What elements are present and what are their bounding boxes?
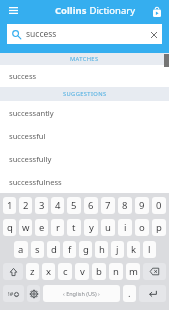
staticText: u: [105, 221, 111, 234]
button[interactable]: y: [84, 219, 98, 236]
staticText: b: [96, 265, 102, 278]
button[interactable]: o: [135, 219, 149, 236]
button[interactable]: a: [14, 241, 28, 258]
button[interactable]: 4: [51, 197, 64, 214]
button[interactable]: v: [75, 263, 89, 280]
staticText: m: [129, 265, 138, 278]
staticText: success: [9, 71, 37, 81]
staticText: d: [51, 243, 57, 256]
button[interactable]: 3: [35, 197, 48, 214]
staticText: o: [139, 221, 145, 234]
staticText: 3: [39, 199, 45, 212]
staticText: x: [46, 265, 52, 278]
button[interactable]: i: [118, 219, 132, 236]
staticText: successfully: [9, 154, 52, 164]
button[interactable]: p: [152, 219, 166, 236]
staticText: successantly: [9, 108, 54, 118]
staticText: successfulness: [9, 177, 62, 187]
button[interactable]: Store: [145, 0, 169, 24]
staticText: MATCHES: [70, 55, 99, 63]
button[interactable]: l: [143, 241, 156, 258]
staticText: 2: [23, 199, 29, 212]
button[interactable]: w: [19, 219, 32, 236]
staticText: g: [83, 243, 89, 256]
staticText: r: [56, 221, 60, 234]
staticText: w: [22, 221, 30, 234]
button[interactable]: Enter: [139, 285, 166, 302]
button[interactable]: 8: [118, 197, 132, 214]
button[interactable]: g: [79, 241, 92, 258]
staticText: Dictionary: [87, 4, 136, 17]
staticText: successful: [9, 131, 46, 141]
button[interactable]: f: [63, 241, 76, 258]
button[interactable]: 0: [152, 197, 166, 214]
staticText: j: [116, 243, 119, 256]
button[interactable]: r: [51, 219, 64, 236]
staticText: success: [26, 28, 57, 40]
staticText: 4: [55, 199, 61, 212]
button[interactable]: Space: [43, 285, 120, 302]
button[interactable]: h: [95, 241, 108, 258]
button[interactable]: u: [101, 219, 115, 236]
staticText: z: [30, 265, 35, 278]
button[interactable]: t: [67, 219, 81, 236]
button[interactable]: c: [58, 263, 72, 280]
button[interactable]: success: [0, 65, 169, 87]
button[interactable]: z: [26, 263, 39, 280]
staticText: i: [124, 221, 127, 234]
button[interactable]: successfulness: [0, 170, 169, 193]
button[interactable]: success: [7, 24, 162, 44]
staticText: 0: [156, 199, 162, 212]
staticText: k: [131, 243, 137, 256]
button[interactable]: j: [111, 241, 124, 258]
staticText: y: [89, 221, 94, 234]
staticText: s: [35, 243, 40, 256]
staticText: Collins: [55, 4, 87, 17]
button[interactable]: Open navigation menu: [0, 0, 27, 20]
button[interactable]: 6: [84, 197, 98, 214]
staticText: ‹ English (US) ›: [63, 290, 100, 297]
staticText: !#: [8, 290, 14, 298]
staticText: n: [113, 265, 119, 278]
button[interactable]: 7: [101, 197, 115, 214]
staticText: 8: [122, 199, 128, 212]
button[interactable]: d: [47, 241, 60, 258]
staticText: l: [148, 243, 151, 256]
button[interactable]: 9: [135, 197, 149, 214]
button[interactable]: k: [127, 241, 140, 258]
button[interactable]: m: [126, 263, 140, 280]
button[interactable]: 1: [3, 197, 16, 214]
staticText: h: [99, 243, 105, 256]
button[interactable]: Shift: [3, 263, 23, 280]
staticText: 1: [7, 199, 13, 212]
button[interactable]: 2: [19, 197, 32, 214]
staticText: e: [39, 221, 45, 234]
staticText: SUGGESTIONS: [63, 90, 107, 98]
staticText: 5: [71, 199, 77, 212]
staticText: p: [156, 221, 162, 234]
staticText: f: [68, 243, 72, 256]
staticText: a: [18, 243, 24, 256]
button[interactable]: Clear search: [145, 26, 162, 43]
staticText: 6: [88, 199, 94, 212]
button[interactable]: 5: [67, 197, 81, 214]
staticText: v: [80, 265, 85, 278]
button[interactable]: x: [42, 263, 55, 280]
staticText: c: [63, 265, 68, 278]
button[interactable]: successful: [0, 124, 169, 147]
button[interactable]: Keyboard settings: [27, 285, 40, 302]
staticText: t: [72, 221, 76, 234]
button[interactable]: q: [3, 219, 16, 236]
button[interactable]: e: [35, 219, 48, 236]
button[interactable]: Backspace: [143, 263, 166, 280]
button[interactable]: successfully: [0, 147, 169, 170]
staticText: .: [128, 287, 131, 300]
button[interactable]: s: [31, 241, 44, 258]
button[interactable]: successantly: [0, 101, 169, 124]
button[interactable]: n: [109, 263, 123, 280]
button[interactable]: .: [123, 285, 136, 302]
staticText: 9: [139, 199, 145, 212]
staticText: q: [7, 221, 13, 234]
button[interactable]: b: [92, 263, 106, 280]
button[interactable]: Symbols: [3, 285, 24, 302]
